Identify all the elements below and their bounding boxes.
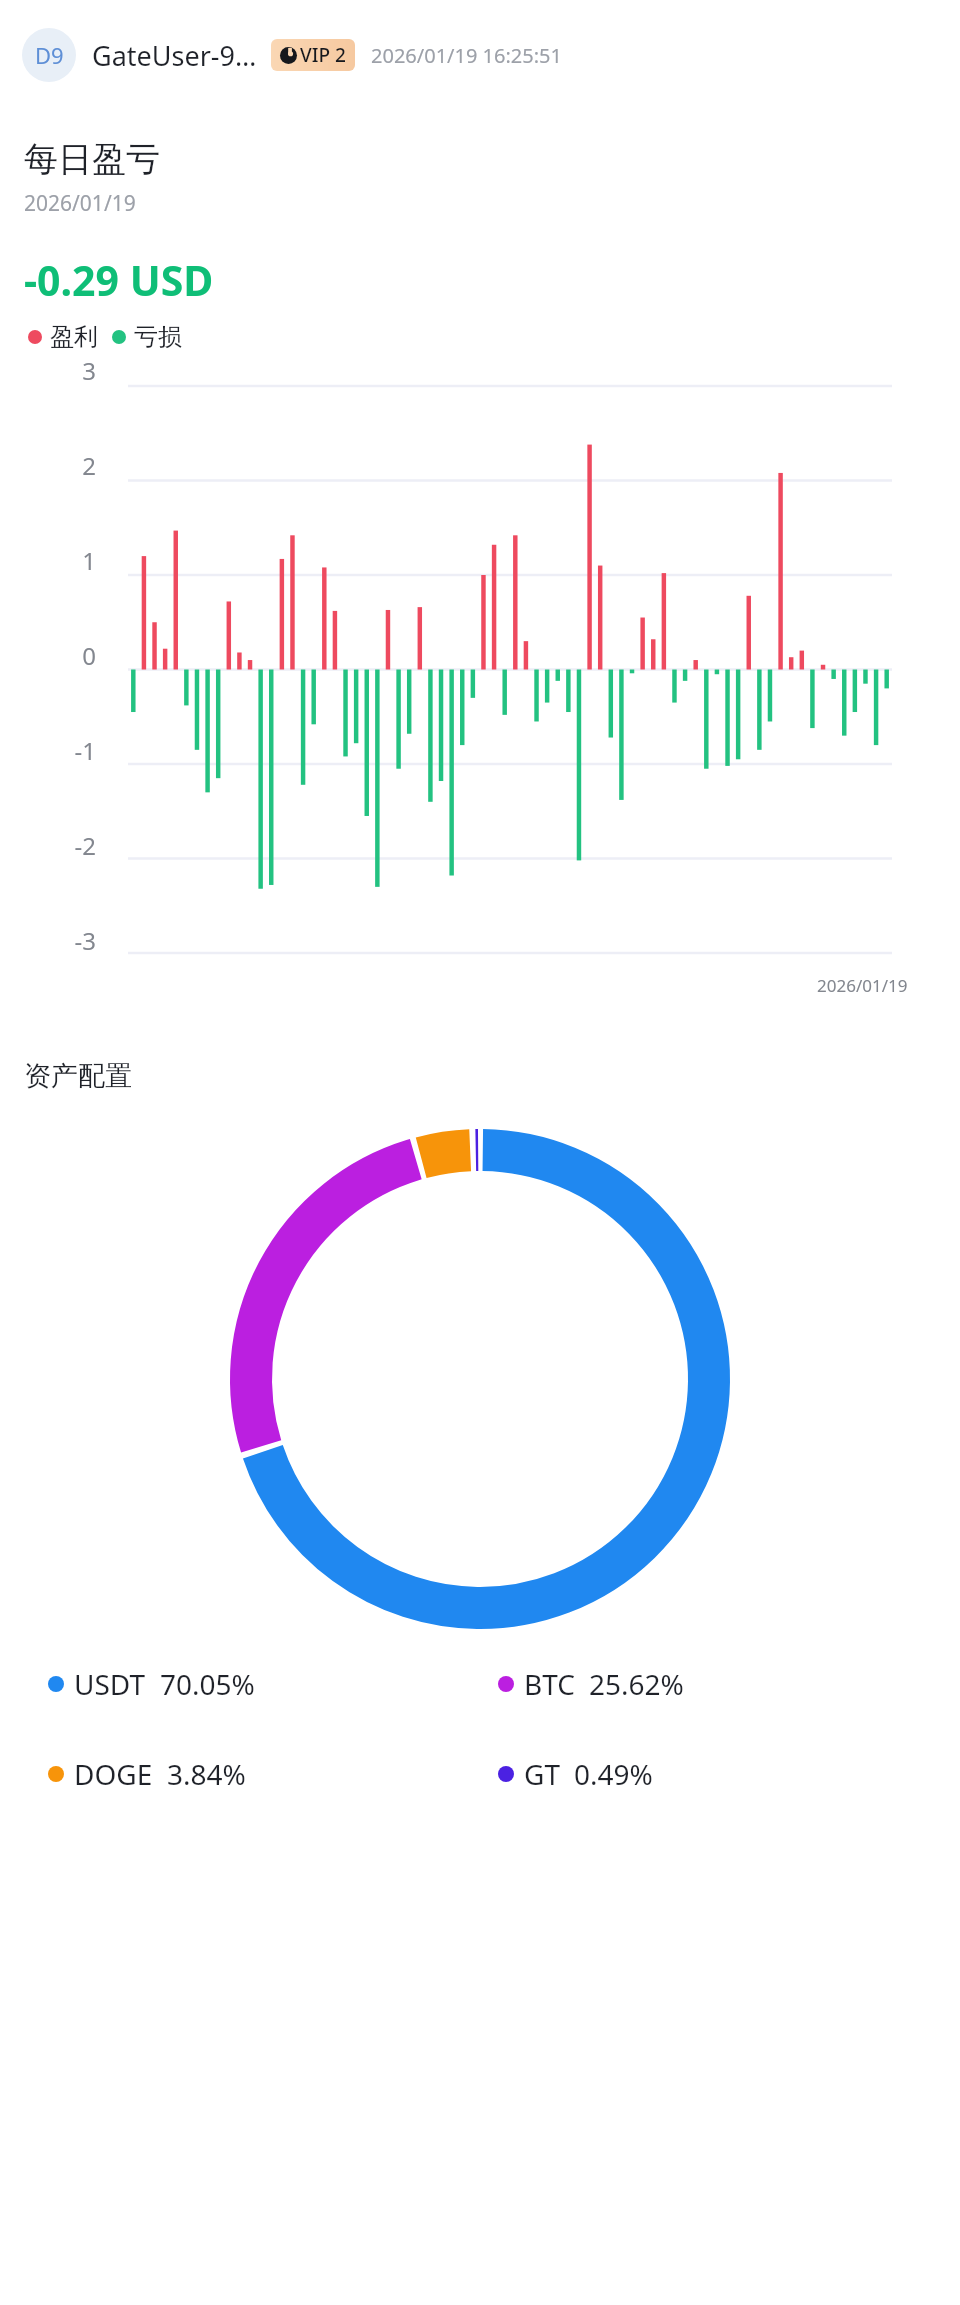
staticText: 2026/01/19 [817, 974, 908, 997]
staticText: 资产配置 [24, 1059, 132, 1093]
button[interactable]: GT [498, 1755, 653, 1793]
staticText: USDT [74, 1665, 146, 1703]
staticText: 70.05% [160, 1665, 255, 1703]
staticText: 0 [0, 639, 96, 672]
staticText: 0.49% [574, 1755, 653, 1793]
staticText: -2 [0, 829, 96, 862]
staticText: 盈利 [50, 322, 98, 352]
staticText: DOGE [74, 1755, 153, 1793]
staticText: 2026/01/19 16:25:51 [371, 42, 562, 69]
staticText: VIP 2 [300, 42, 346, 68]
button[interactable]: VIP 2 [271, 39, 355, 71]
staticText: 1 [0, 544, 96, 577]
staticText: -3 [0, 924, 96, 954]
button[interactable]: BTC [498, 1665, 684, 1703]
staticText: D9 [35, 40, 64, 70]
staticText: BTC [524, 1665, 575, 1703]
staticText: 3.84% [167, 1755, 246, 1793]
staticText: -0.29 USD [24, 252, 214, 308]
staticText: 2026/01/19 [24, 189, 136, 218]
button[interactable]: Avatar [22, 28, 76, 82]
staticText: GateUser-9… [92, 37, 257, 74]
staticText: 3 [0, 354, 96, 387]
button[interactable]: DOGE [48, 1755, 246, 1793]
staticText: GT [524, 1755, 560, 1793]
button[interactable]: USDT [48, 1665, 255, 1703]
staticText: 每日盈亏 [24, 138, 160, 181]
staticText: -1 [0, 734, 96, 767]
staticText: 亏损 [134, 322, 182, 352]
staticText: 2 [0, 449, 96, 482]
staticText: 25.62% [589, 1665, 684, 1703]
